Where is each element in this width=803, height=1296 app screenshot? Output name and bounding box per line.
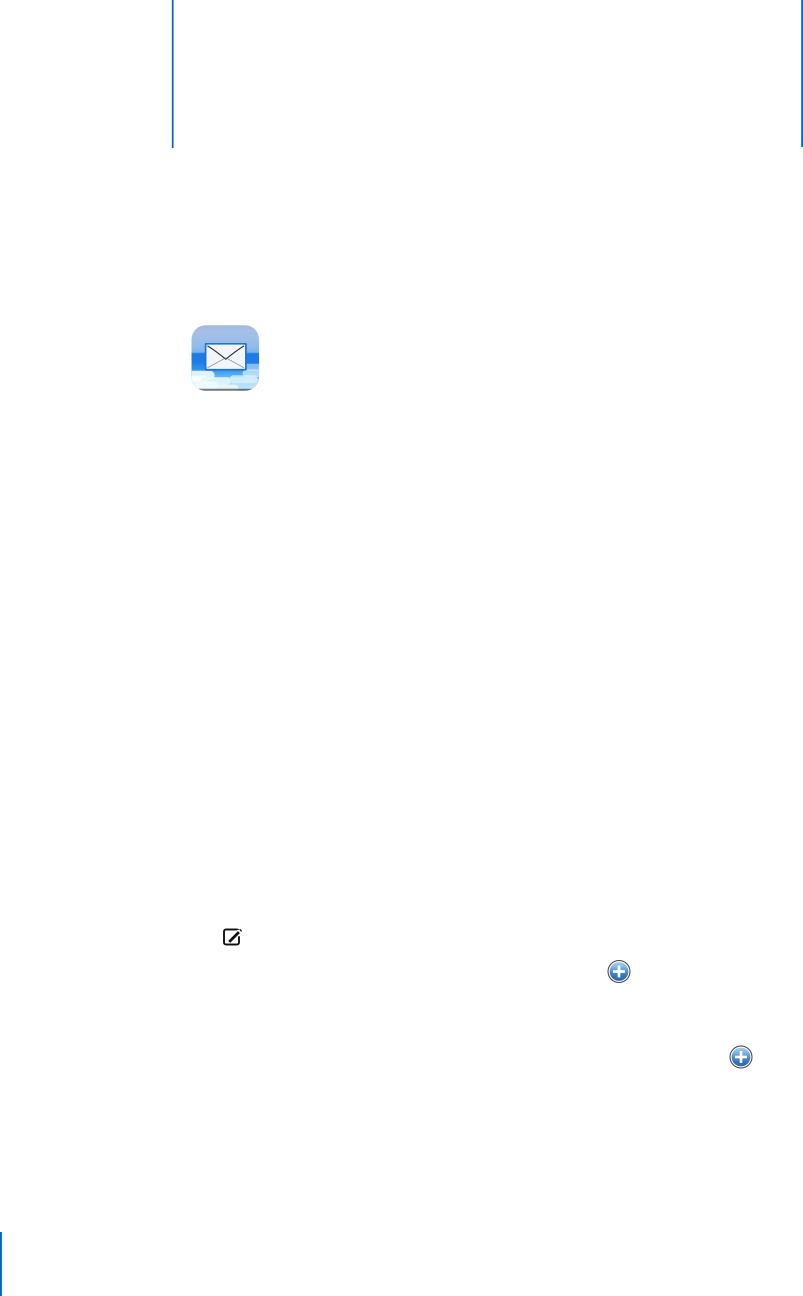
button[interactable]: Add (607, 959, 631, 983)
button[interactable]: Mail (192, 325, 259, 391)
button[interactable]: Compose (224, 927, 243, 944)
button[interactable]: Add (729, 1045, 753, 1069)
